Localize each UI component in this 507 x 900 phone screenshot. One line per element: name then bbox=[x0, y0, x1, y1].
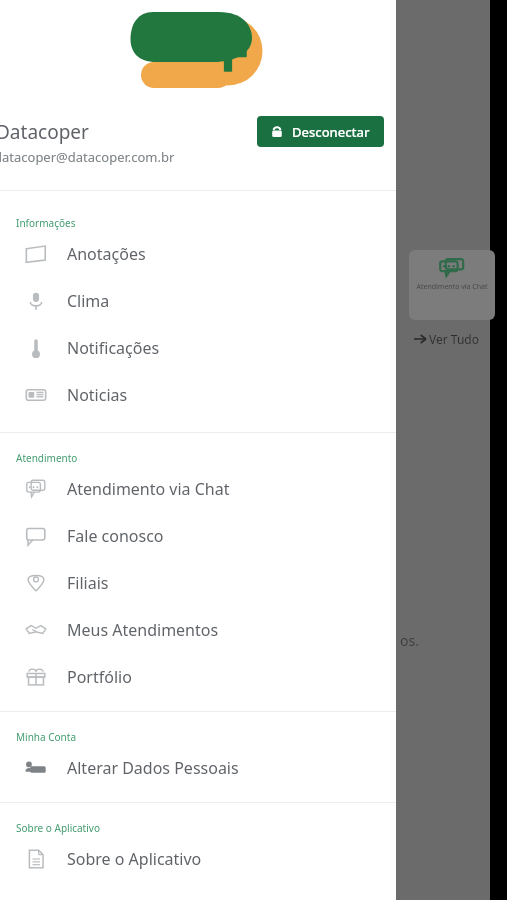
staticText: Atendimento via Chat bbox=[67, 478, 230, 500]
button[interactable]: Fale conosco bbox=[0, 512, 396, 559]
staticText: Sobre o Aplicativo bbox=[16, 821, 100, 835]
button[interactable]: Filiais bbox=[0, 559, 396, 606]
button[interactable]: Sobre o Aplicativo bbox=[0, 835, 396, 882]
staticText: os. bbox=[400, 631, 419, 650]
staticText: Datacoper bbox=[0, 119, 89, 145]
staticText: Minha Conta bbox=[16, 730, 76, 744]
staticText: Noticias bbox=[67, 384, 128, 406]
staticText: Informações bbox=[16, 216, 76, 230]
staticText: Sobre o Aplicativo bbox=[67, 848, 202, 870]
button[interactable]: Portfólio bbox=[0, 653, 396, 700]
staticText: Alterar Dados Pessoais bbox=[67, 757, 239, 779]
staticText: Portfólio bbox=[67, 666, 132, 688]
staticText: Clima bbox=[67, 290, 110, 312]
button[interactable]: Notificações bbox=[0, 324, 396, 371]
button[interactable]: Ver Tudo bbox=[414, 331, 479, 347]
button[interactable]: Noticias bbox=[0, 371, 396, 418]
staticText: Fale conosco bbox=[67, 525, 164, 547]
staticText: Meus Atendimentos bbox=[67, 619, 219, 641]
staticText: Notificações bbox=[67, 337, 160, 359]
button[interactable]: Atendimento via Chat bbox=[0, 465, 396, 512]
staticText: Atendimento bbox=[16, 451, 78, 465]
button[interactable]: Atendimento via Chat bbox=[409, 250, 495, 320]
staticText: Filiais bbox=[67, 572, 109, 594]
staticText: Atendimento via Chat bbox=[416, 282, 488, 292]
button[interactable]: Meus Atendimentos bbox=[0, 606, 396, 653]
button[interactable]: Anotações bbox=[0, 230, 396, 277]
button[interactable]: Desconectar bbox=[257, 116, 384, 147]
staticText: Desconectar bbox=[292, 123, 370, 141]
staticText: datacoper@datacoper.com.br bbox=[0, 148, 175, 166]
button[interactable]: Clima bbox=[0, 277, 396, 324]
button[interactable]: Alterar Dados Pessoais bbox=[0, 744, 396, 791]
staticText: Anotações bbox=[67, 243, 146, 265]
staticText: Ver Tudo bbox=[429, 331, 479, 347]
